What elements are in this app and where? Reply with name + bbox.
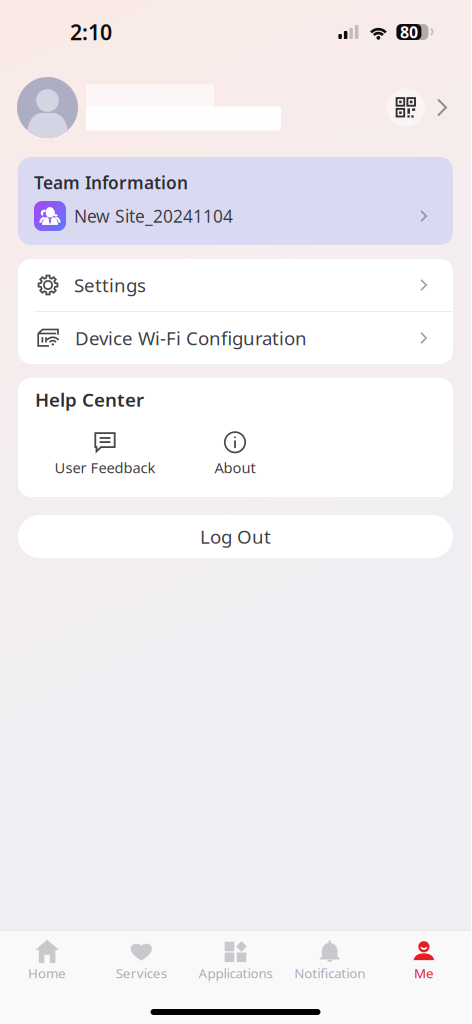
staticText: About xyxy=(214,458,255,477)
staticText: 80 xyxy=(400,21,418,43)
staticText: Applications xyxy=(198,964,272,982)
button[interactable]: Applications xyxy=(188,939,283,983)
button[interactable]: Me xyxy=(377,939,471,983)
button[interactable]: Device Wi-Fi Configuration xyxy=(18,312,453,364)
staticText: User Feedback xyxy=(54,458,155,477)
button[interactable]: Account details xyxy=(426,89,458,125)
button[interactable]: Settings xyxy=(18,259,453,311)
staticText: Notification xyxy=(294,964,365,982)
button[interactable]: QR code xyxy=(386,87,426,127)
staticText: Team Information xyxy=(34,171,188,194)
staticText: Settings xyxy=(74,273,146,297)
button[interactable]: Services xyxy=(94,939,188,983)
staticText: Help Center xyxy=(35,387,144,412)
button[interactable]: Team Information xyxy=(18,157,453,245)
button[interactable]: User Feedback xyxy=(18,432,192,477)
staticText: Me xyxy=(414,964,434,982)
staticText: 2:10 xyxy=(70,18,112,46)
staticText: New Site_20241104 xyxy=(74,204,233,227)
staticText: Device Wi-Fi Configuration xyxy=(75,326,307,350)
button[interactable]: About xyxy=(192,432,278,477)
button[interactable]: Notification xyxy=(283,939,377,983)
button[interactable]: Home xyxy=(0,939,94,983)
staticText: Services xyxy=(116,964,167,982)
staticText: Home xyxy=(28,964,66,982)
staticText: Log Out xyxy=(200,524,271,549)
button[interactable]: Log Out xyxy=(18,515,453,558)
